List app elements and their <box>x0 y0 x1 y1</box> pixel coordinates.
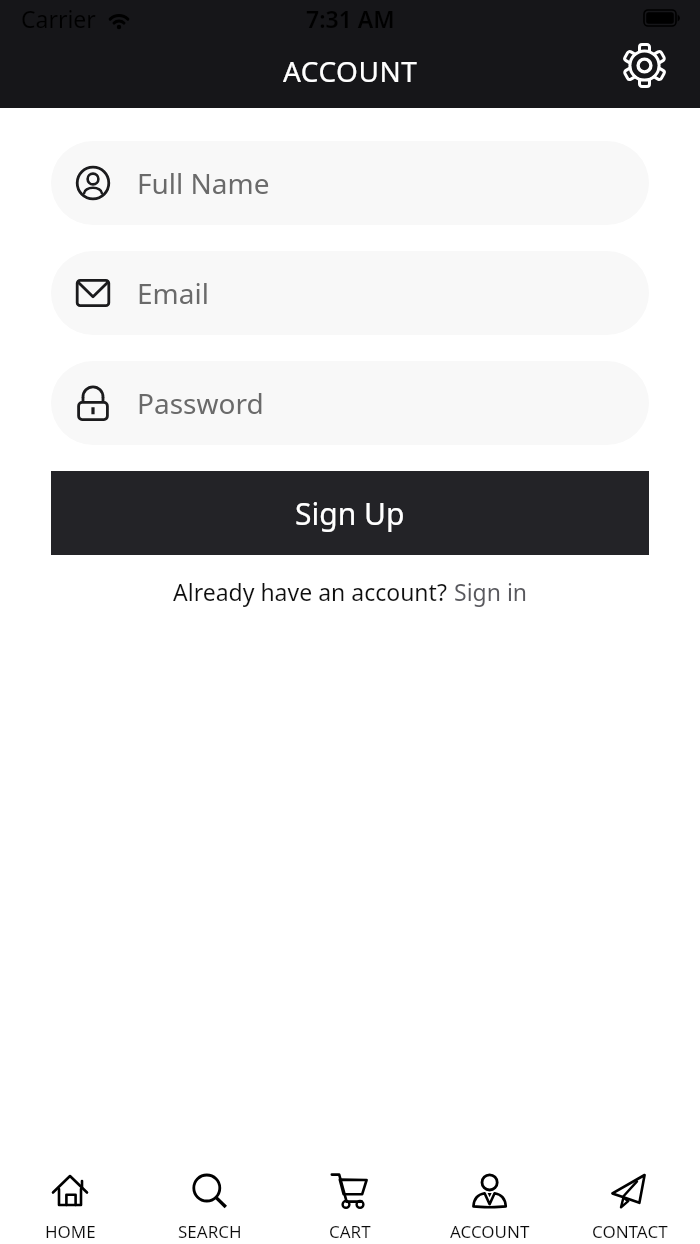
button[interactable]: HOME <box>0 1156 140 1244</box>
button[interactable] <box>622 43 667 88</box>
staticText: Sign Up <box>295 493 405 534</box>
staticText: Email <box>137 274 209 312</box>
staticText: Full Name <box>137 164 270 202</box>
button[interactable]: Password <box>51 361 649 445</box>
staticText: ACCOUNT <box>450 1220 530 1243</box>
staticText: CART <box>329 1220 371 1243</box>
staticText: Carrier <box>21 3 96 34</box>
staticText: Already have an account? <box>173 576 447 607</box>
staticText: 7:31 AM <box>306 3 395 34</box>
button[interactable]: Sign in <box>454 576 528 607</box>
staticText: Password <box>137 384 264 422</box>
staticText: SEARCH <box>178 1220 242 1243</box>
button[interactable]: Sign Up <box>51 471 649 555</box>
button[interactable]: CART <box>280 1156 420 1244</box>
button[interactable]: CONTACT <box>560 1156 700 1244</box>
staticText: ACCOUNT <box>283 52 418 90</box>
button[interactable]: SEARCH <box>140 1156 280 1244</box>
staticText: HOME <box>45 1220 96 1243</box>
button[interactable]: Email <box>51 251 649 335</box>
button[interactable]: Full Name <box>51 141 649 225</box>
staticText: Sign in <box>454 576 528 607</box>
staticText: CONTACT <box>592 1220 668 1243</box>
button[interactable]: ACCOUNT <box>420 1156 560 1244</box>
